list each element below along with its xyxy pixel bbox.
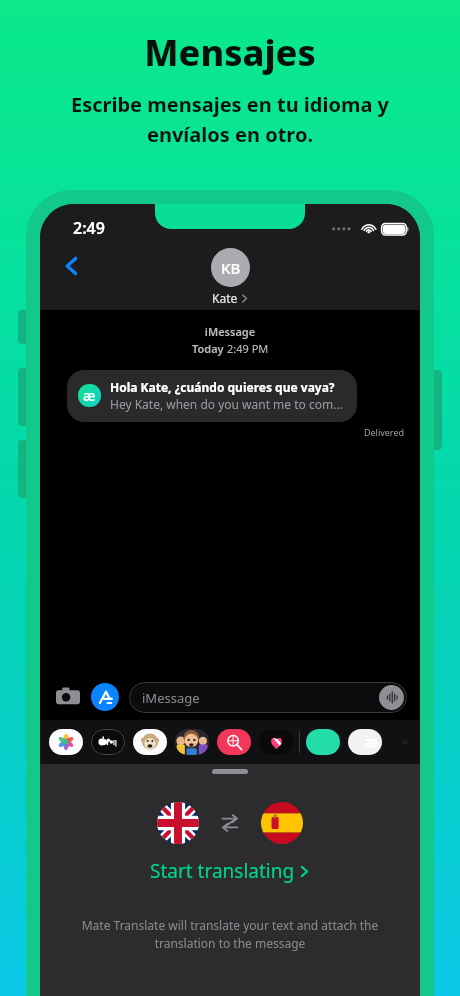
staticText: Start translating: [150, 858, 295, 884]
button[interactable]: Start translating: [150, 858, 310, 884]
staticText: Hey Kate, when do you want me to com…: [110, 396, 343, 412]
button[interactable]: Audio message: [379, 685, 404, 710]
button[interactable]: App Store: [91, 683, 119, 711]
staticText: æ: [83, 386, 96, 405]
staticText: Escribe mensajes en tu idioma y envíalos…: [0, 91, 460, 148]
button[interactable]: [91, 729, 125, 755]
button[interactable]: English: [157, 802, 199, 844]
button[interactable]: [348, 729, 382, 755]
button[interactable]: [259, 729, 293, 755]
button[interactable]: æ: [67, 370, 357, 422]
button[interactable]: Swap languages: [217, 810, 243, 836]
staticText: iMessage: [40, 324, 420, 339]
staticText: Mensajes: [144, 28, 316, 77]
button[interactable]: Camera: [53, 682, 83, 712]
staticText: 2:49: [73, 217, 105, 239]
button[interactable]: [175, 729, 209, 755]
button[interactable]: [133, 729, 167, 755]
staticText: Kate: [212, 290, 238, 306]
button[interactable]: iMessage: [129, 682, 407, 713]
staticText: Mate Translate will translate your text …: [58, 917, 402, 952]
button[interactable]: Spanish: [261, 802, 303, 844]
staticText: Hola Kate, ¿cuándo quieres que vaya?: [110, 379, 335, 395]
staticText: Today: [192, 341, 227, 356]
button[interactable]: [217, 729, 251, 755]
button[interactable]: KB: [211, 248, 250, 287]
button[interactable]: [306, 729, 340, 755]
staticText: æ: [364, 731, 379, 753]
staticText: 2:49 PM: [227, 341, 269, 356]
staticText: iMessage: [142, 689, 200, 707]
button[interactable]: [49, 729, 83, 755]
staticText: KB: [221, 258, 241, 278]
button[interactable]: Back: [54, 248, 90, 284]
staticText: Delivered: [40, 426, 404, 438]
